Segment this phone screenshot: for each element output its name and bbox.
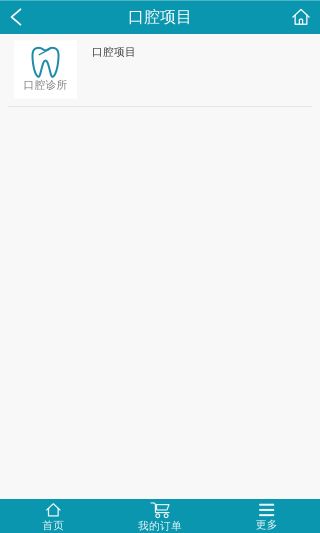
button[interactable]: 首页	[0, 499, 107, 533]
button[interactable]: 口腔诊所	[0, 34, 320, 107]
button[interactable]: 我的订单	[107, 499, 213, 533]
staticText: 口腔项目	[92, 45, 136, 59]
button[interactable]: Home	[282, 0, 320, 34]
staticText: 首页	[42, 519, 64, 532]
button[interactable]: 更多	[213, 499, 320, 533]
staticText: 口腔诊所	[23, 78, 67, 91]
staticText: 更多	[256, 518, 278, 531]
staticText: 我的订单	[138, 519, 182, 532]
button[interactable]: Back	[0, 0, 32, 34]
staticText: 口腔项目	[128, 7, 192, 27]
